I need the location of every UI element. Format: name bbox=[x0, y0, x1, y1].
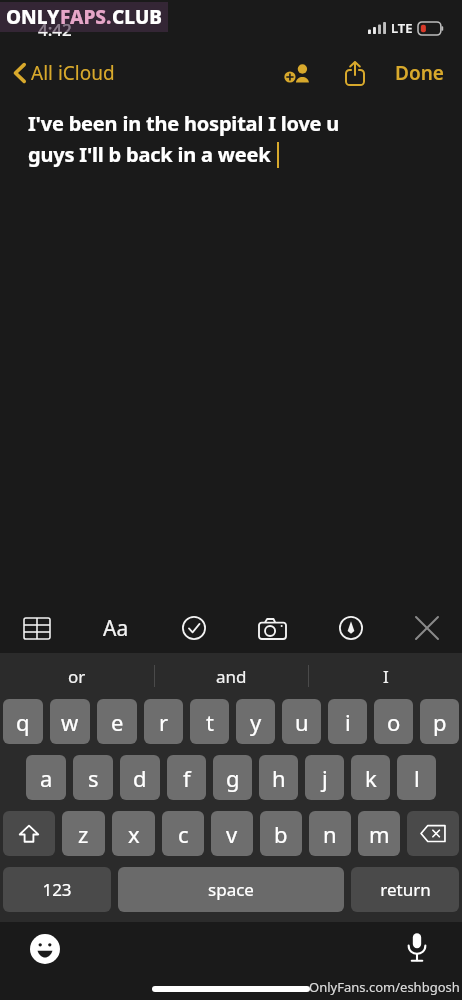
button[interactable]: d bbox=[120, 755, 160, 800]
button[interactable]: m bbox=[358, 811, 400, 856]
staticText: z bbox=[78, 819, 89, 849]
button[interactable]: b bbox=[260, 811, 302, 856]
button[interactable]: w bbox=[50, 699, 90, 744]
button[interactable]: Add people bbox=[279, 57, 317, 89]
staticText: CLUB bbox=[112, 4, 162, 30]
button[interactable]: Markup bbox=[331, 608, 371, 648]
staticText: f bbox=[183, 763, 191, 793]
staticText: I bbox=[383, 665, 389, 688]
staticText: FAPS. bbox=[60, 4, 112, 30]
button[interactable]: i bbox=[328, 699, 367, 744]
button[interactable]: p bbox=[420, 699, 459, 744]
button[interactable]: h bbox=[259, 755, 298, 800]
staticText: h bbox=[272, 763, 286, 793]
staticText: v bbox=[226, 819, 238, 849]
staticText: guys I'll b back in a week bbox=[28, 141, 271, 168]
staticText: I've been in the hospital I love u bbox=[28, 110, 340, 137]
button[interactable]: Table bbox=[16, 610, 58, 647]
staticText: Aa bbox=[103, 614, 129, 643]
staticText: 123 bbox=[42, 878, 72, 901]
staticText: c bbox=[178, 819, 189, 849]
button[interactable]: e bbox=[97, 699, 137, 744]
staticText: m bbox=[369, 819, 390, 849]
staticText: y bbox=[250, 707, 262, 737]
button[interactable]: Close bbox=[408, 609, 446, 647]
staticText: g bbox=[226, 763, 240, 793]
button[interactable]: y bbox=[236, 699, 275, 744]
button[interactable]: Format bbox=[95, 606, 137, 651]
staticText: q bbox=[16, 707, 30, 737]
staticText: k bbox=[365, 763, 377, 793]
button[interactable]: return bbox=[351, 867, 459, 912]
button[interactable]: space bbox=[118, 867, 344, 912]
staticText: or bbox=[68, 665, 86, 688]
staticText: o bbox=[387, 707, 401, 737]
staticText: LTE bbox=[391, 19, 413, 37]
staticText: space bbox=[208, 878, 254, 901]
button[interactable]: f bbox=[167, 755, 206, 800]
staticText: j bbox=[322, 763, 328, 793]
button[interactable]: v bbox=[211, 811, 253, 856]
staticText: and bbox=[216, 665, 247, 688]
button[interactable]: x bbox=[112, 811, 155, 856]
button[interactable]: Share bbox=[339, 55, 371, 92]
button[interactable]: and bbox=[155, 653, 308, 699]
staticText: s bbox=[88, 763, 99, 793]
button[interactable]: Done bbox=[391, 54, 448, 92]
button[interactable]: g bbox=[213, 755, 252, 800]
staticText: Done bbox=[395, 60, 444, 86]
staticText: 4:42 bbox=[38, 18, 72, 41]
staticText: All iCloud bbox=[31, 60, 115, 86]
staticText: u bbox=[295, 707, 309, 737]
staticText: e bbox=[111, 707, 124, 737]
button[interactable]: r bbox=[144, 699, 183, 744]
button[interactable]: k bbox=[351, 755, 390, 800]
button[interactable]: I bbox=[309, 653, 462, 699]
button[interactable]: c bbox=[162, 811, 204, 856]
button[interactable]: Emoji bbox=[26, 930, 64, 968]
button[interactable]: Dictation bbox=[402, 928, 432, 966]
staticText: d bbox=[133, 763, 147, 793]
staticText: OnlyFans.com/eshbgosh bbox=[309, 978, 460, 996]
button[interactable]: 123 bbox=[3, 867, 111, 912]
staticText: a bbox=[40, 763, 53, 793]
button[interactable]: u bbox=[282, 699, 321, 744]
button[interactable]: Shift bbox=[3, 811, 55, 856]
staticText: ONLY bbox=[6, 4, 60, 30]
button[interactable]: Backspace bbox=[407, 811, 459, 856]
staticText: t bbox=[206, 707, 214, 737]
button[interactable]: Checklist bbox=[174, 608, 214, 648]
button[interactable]: q bbox=[3, 699, 43, 744]
button[interactable]: o bbox=[374, 699, 413, 744]
button[interactable]: or bbox=[0, 653, 154, 699]
staticText: b bbox=[274, 819, 288, 849]
button[interactable]: n bbox=[309, 811, 351, 856]
staticText: l bbox=[414, 763, 420, 793]
button[interactable]: t bbox=[190, 699, 229, 744]
staticText: return bbox=[380, 878, 431, 901]
button[interactable]: l bbox=[397, 755, 436, 800]
staticText: p bbox=[433, 707, 447, 737]
button[interactable]: a bbox=[26, 755, 66, 800]
staticText: x bbox=[128, 819, 140, 849]
staticText: i bbox=[345, 707, 351, 737]
staticText: n bbox=[323, 819, 337, 849]
button[interactable]: All iCloud bbox=[10, 56, 119, 90]
staticText: r bbox=[159, 707, 169, 737]
button[interactable]: s bbox=[73, 755, 113, 800]
button[interactable]: j bbox=[305, 755, 344, 800]
staticText: w bbox=[61, 707, 79, 737]
button[interactable]: Camera bbox=[251, 610, 294, 647]
button[interactable]: z bbox=[62, 811, 105, 856]
